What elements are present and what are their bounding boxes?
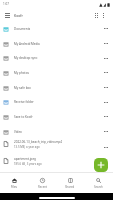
button[interactable]: My photos xyxy=(0,65,113,80)
staticText: Koofr xyxy=(14,13,23,18)
button[interactable]: Video xyxy=(0,124,113,139)
staticText: Receive folder xyxy=(14,100,99,104)
button[interactable]: Documents xyxy=(0,21,113,36)
staticText: Search xyxy=(94,185,103,189)
staticText: Documents xyxy=(14,27,99,31)
button[interactable]: Item options xyxy=(99,65,113,80)
staticText: apartment.jpeg xyxy=(14,157,36,161)
staticText: 13.5 MB, a year ago xyxy=(14,145,40,149)
staticText: 2022-06-13_beach_trip_video.mp4 xyxy=(14,140,62,144)
button[interactable]: Item options xyxy=(99,139,113,156)
staticText: My photos xyxy=(14,71,99,75)
button[interactable]: Item options xyxy=(99,95,113,109)
button[interactable]: Add xyxy=(94,158,108,172)
button[interactable]: Files xyxy=(0,173,28,193)
staticText: Files xyxy=(11,185,17,189)
staticText: Shared xyxy=(65,185,75,189)
button[interactable]: More options xyxy=(97,9,113,21)
staticText: 185.6 kB, 3 years ago xyxy=(14,162,42,166)
staticText: My desktop sync xyxy=(14,56,99,60)
staticText: My safe box xyxy=(14,86,99,90)
button[interactable]: Item options xyxy=(99,36,113,51)
staticText: 1:07 xyxy=(3,2,9,6)
button[interactable]: Item options xyxy=(99,109,113,124)
button[interactable]: Save to Koofr xyxy=(0,109,113,124)
button[interactable]: Item options xyxy=(99,80,113,95)
button[interactable]: Search xyxy=(84,173,112,193)
staticText: Save to Koofr xyxy=(14,115,99,119)
staticText: My Android Media xyxy=(14,42,99,46)
button[interactable]: Menu xyxy=(0,9,14,21)
button[interactable]: Item options xyxy=(99,51,113,65)
button[interactable]: My Android Media xyxy=(0,36,113,51)
button[interactable]: Recent xyxy=(28,173,56,193)
button[interactable]: apartment.jpeg xyxy=(0,156,113,172)
staticText: Recent xyxy=(38,185,47,189)
button[interactable]: Item options xyxy=(99,21,113,36)
button[interactable]: 2022-06-13_beach_trip_video.mp4 xyxy=(0,139,113,156)
button[interactable]: Receive folder xyxy=(0,95,113,109)
staticText: Video xyxy=(14,130,99,134)
button[interactable]: My safe box xyxy=(0,80,113,95)
button[interactable]: Shared xyxy=(56,173,84,193)
button[interactable]: Item options xyxy=(99,156,113,172)
button[interactable]: Switch view xyxy=(84,9,97,21)
button[interactable]: My desktop sync xyxy=(0,51,113,65)
button[interactable]: Item options xyxy=(99,124,113,139)
